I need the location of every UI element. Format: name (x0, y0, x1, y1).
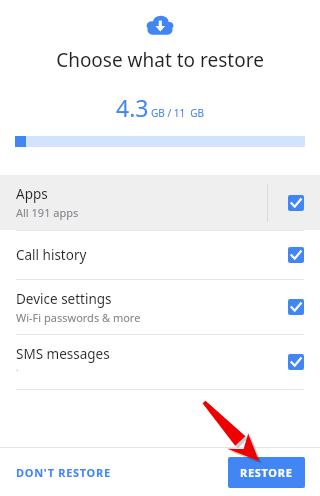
staticText: GB / 11 GB (151, 106, 205, 120)
button[interactable]: Apps (0, 175, 320, 230)
staticText: Device settings (16, 290, 112, 308)
staticText: Wi-Fi passwords & more (16, 310, 141, 325)
staticText: Apps (16, 185, 48, 203)
staticText: DON'T RESTORE (16, 465, 111, 480)
staticText: 4.3 (116, 92, 149, 123)
staticText: Choose what to restore (0, 47, 320, 73)
button[interactable]: Restore from backup (146, 14, 174, 36)
staticText: ' (16, 365, 19, 380)
button[interactable]: SMS messages (0, 335, 320, 389)
staticText: All 191 apps (16, 205, 79, 220)
button[interactable]: Device settings (0, 280, 320, 334)
staticText: SMS messages (16, 345, 110, 363)
button[interactable]: Call history (0, 231, 320, 279)
button[interactable]: DON'T RESTORE (8, 459, 119, 486)
staticText: RESTORE (240, 465, 293, 480)
button[interactable]: RESTORE (228, 457, 305, 488)
staticText: Call history (16, 246, 87, 264)
